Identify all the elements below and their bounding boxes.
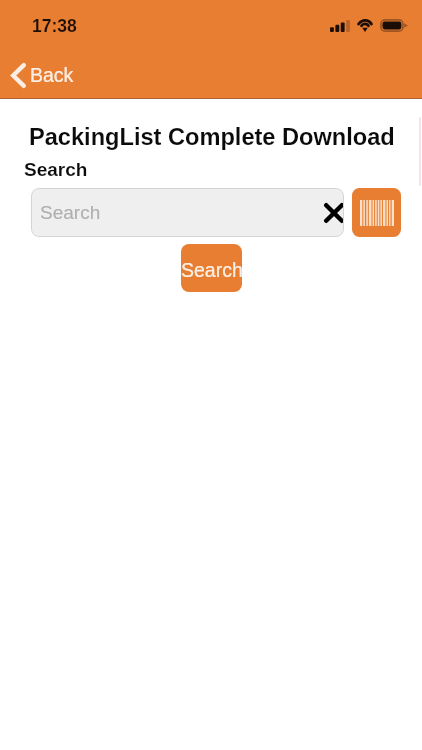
- staticText: Search: [40, 202, 101, 223]
- button[interactable]: Clear search: [319, 198, 344, 228]
- staticText: 17:38: [32, 16, 77, 36]
- staticText: Search: [24, 159, 88, 180]
- staticText: Back: [30, 64, 74, 86]
- button[interactable]: Search: [181, 244, 242, 292]
- button[interactable]: Back: [7, 60, 80, 91]
- button[interactable]: Search: [31, 188, 344, 237]
- button[interactable]: Scan barcode: [352, 188, 401, 237]
- staticText: PackingList Complete Download: [29, 124, 395, 150]
- staticText: Search: [181, 259, 242, 281]
